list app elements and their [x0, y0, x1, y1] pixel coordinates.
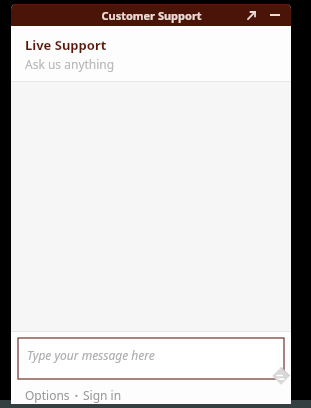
button[interactable]: Type your message here: [18, 338, 284, 379]
button[interactable]: Expand: [241, 5, 261, 25]
button[interactable]: Minimize: [265, 5, 285, 25]
button[interactable]: Customer Support: [11, 4, 291, 26]
staticText: Live Support: [25, 36, 107, 54]
staticText: Type your message here: [27, 347, 155, 363]
staticText: •: [70, 389, 83, 401]
staticText: Options: [25, 387, 70, 403]
other: Resize: [270, 365, 291, 387]
button[interactable]: Sign in: [83, 387, 122, 403]
staticText: Sign in: [83, 387, 122, 403]
staticText: Customer Support: [101, 8, 202, 23]
button[interactable]: Live Support: [11, 26, 291, 81]
button[interactable]: Options: [25, 387, 70, 403]
staticText: Ask us anything: [25, 56, 115, 72]
